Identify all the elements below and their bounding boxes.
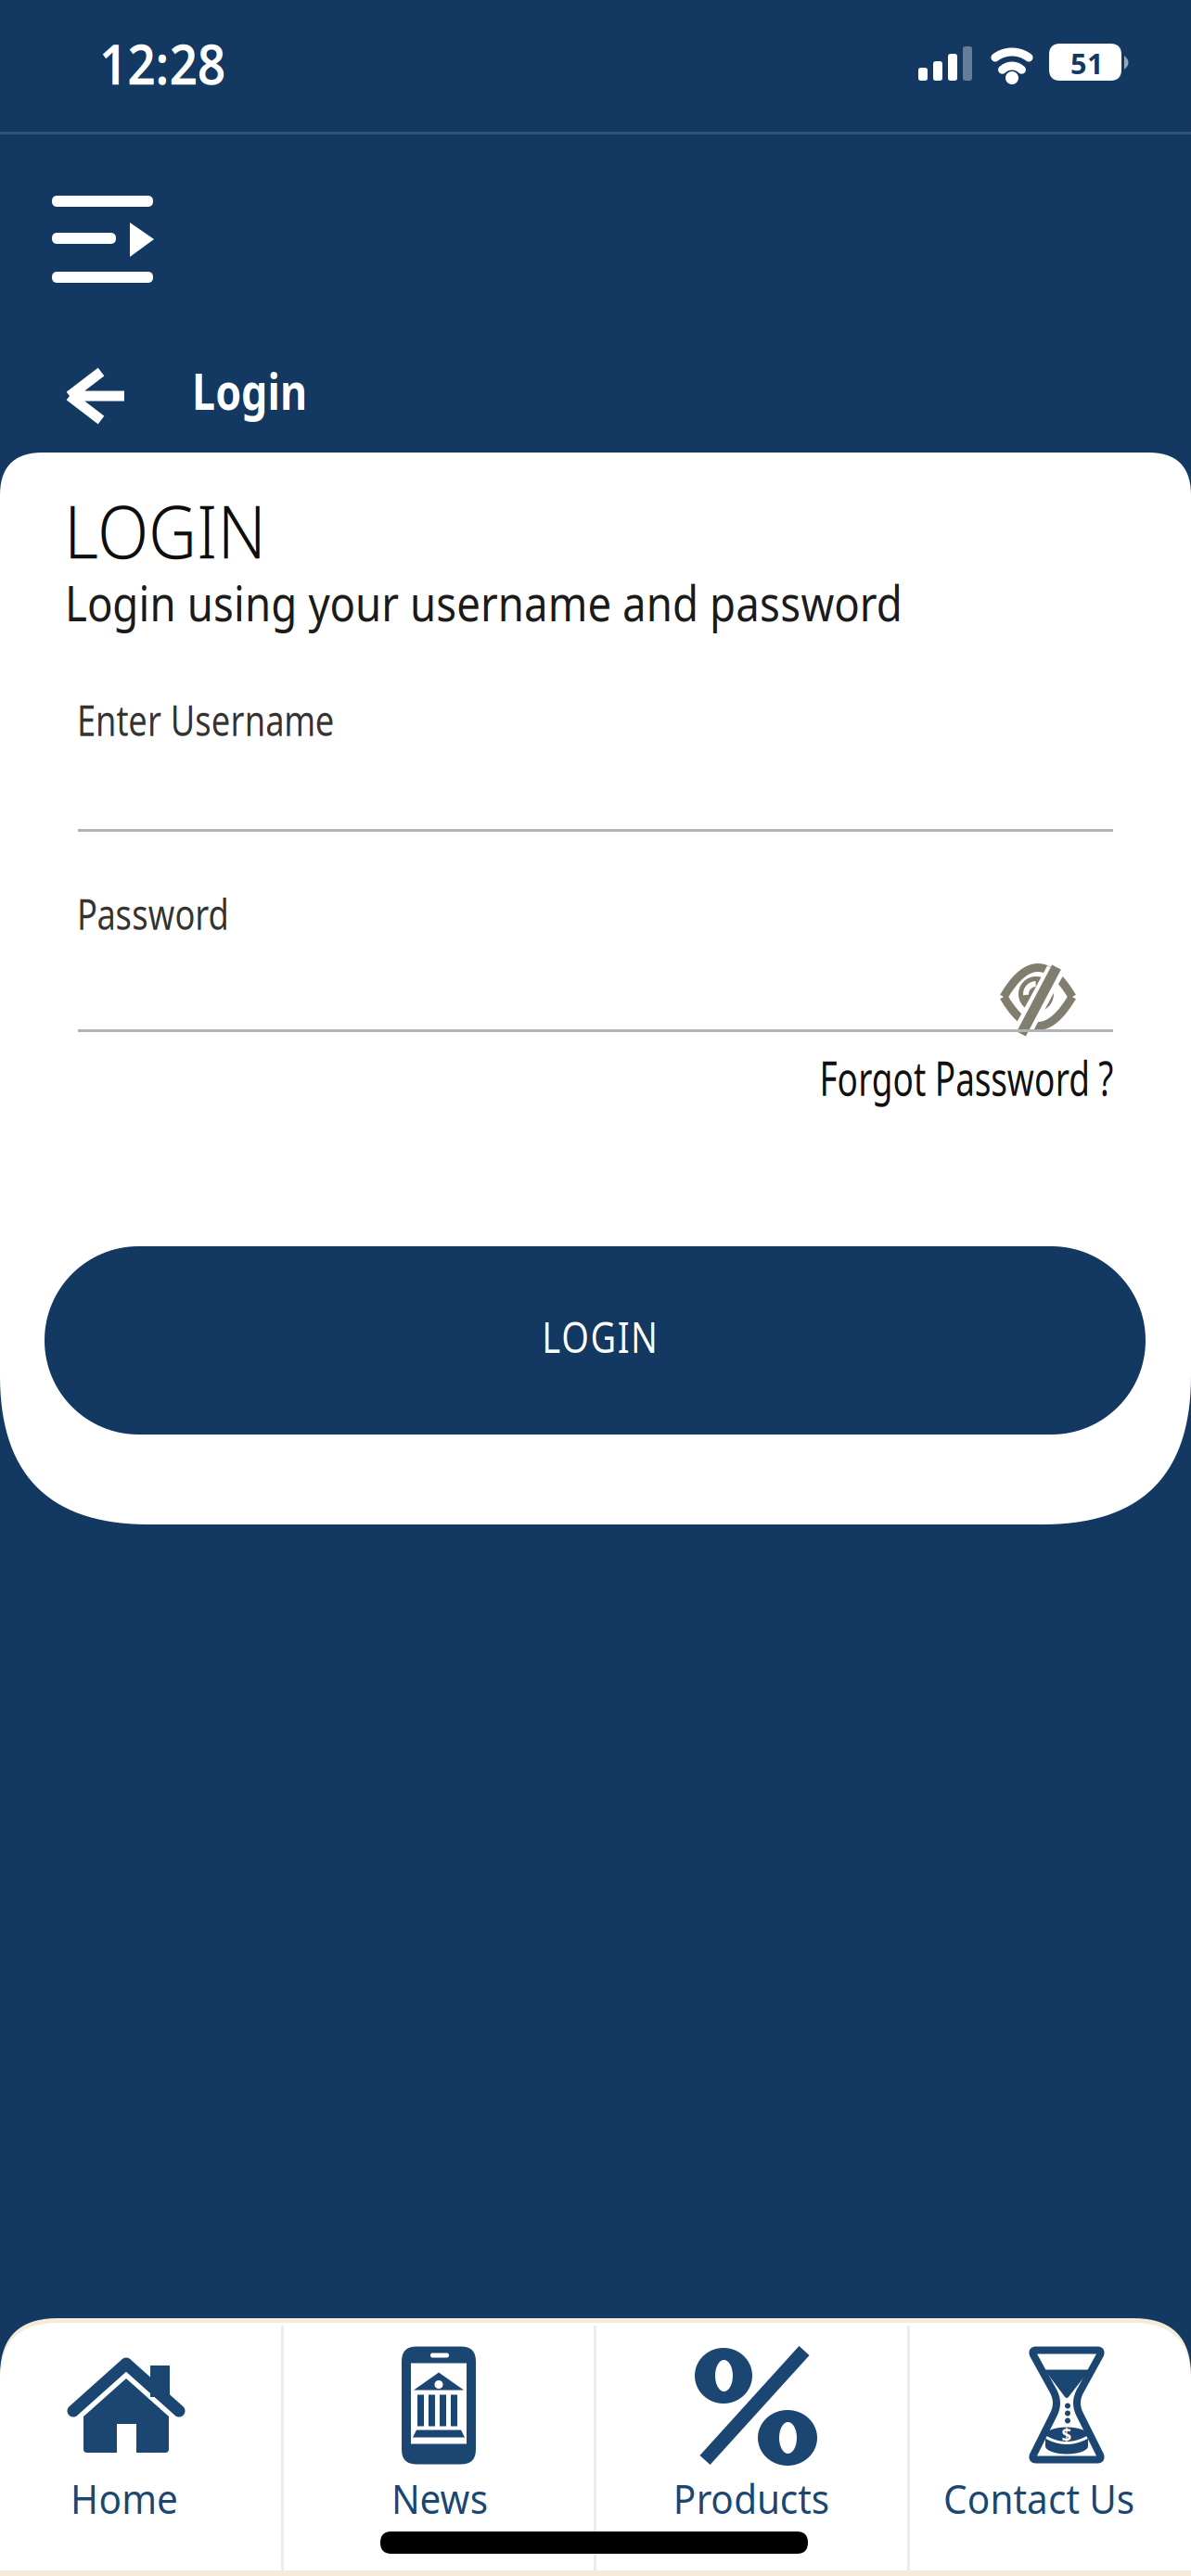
button[interactable]: Show password [988,950,1090,1043]
staticText: Forgot Password ? [765,1046,1168,1109]
staticText: Home [66,2471,183,2525]
staticText: $ [1062,2423,1072,2446]
staticText: News [387,2471,492,2525]
staticText: Login using your username and password [65,569,1044,635]
staticText: Password [77,886,267,941]
staticText: 51 [1070,44,1104,82]
staticText: Contact Us [935,2471,1143,2525]
button[interactable]: News [284,2324,595,2576]
button[interactable]: LOGIN [45,1246,1146,1435]
button[interactable]: $ [910,2324,1191,2576]
button[interactable]: Forgot Password ? [765,1046,1168,1109]
button[interactable]: Home [0,2324,282,2576]
staticText: LOGIN [531,1309,668,1365]
staticText: Products [666,2471,836,2525]
button[interactable]: Products [596,2324,907,2576]
staticText: Login [192,358,329,424]
staticText: Enter Username [77,692,399,748]
staticText: 12:28 [91,26,233,100]
staticText: LOGIN [64,480,288,579]
button[interactable]: Back [53,361,146,431]
button[interactable]: Menu [33,177,173,302]
